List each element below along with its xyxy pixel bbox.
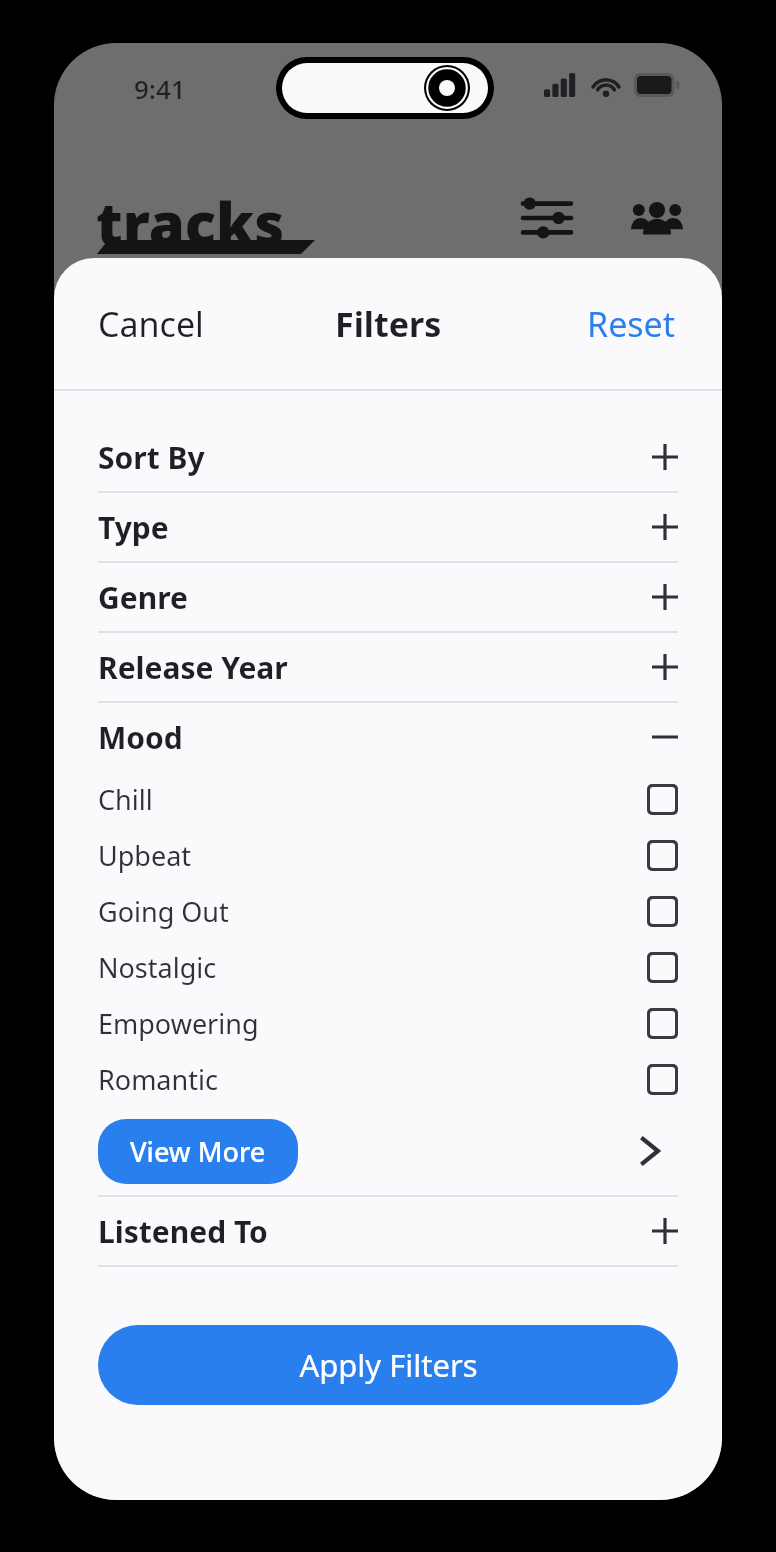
button[interactable]: Nostalgic: [98, 939, 678, 995]
button[interactable]: Filters: [514, 185, 580, 251]
staticText: View More: [130, 1133, 266, 1170]
staticText: Upbeat: [98, 837, 192, 874]
staticText: Nostalgic: [98, 949, 217, 986]
staticText: Going Out: [98, 893, 229, 930]
button[interactable]: Going Out: [98, 883, 678, 939]
staticText: Cancel: [98, 301, 204, 347]
staticText: Listened To: [98, 1211, 268, 1252]
staticText: Filters: [335, 301, 442, 347]
staticText: Reset: [587, 301, 676, 347]
button[interactable]: Romantic: [98, 1051, 678, 1107]
button[interactable]: Genre: [98, 563, 678, 631]
button[interactable]: Empowering: [98, 995, 678, 1051]
button[interactable]: Upbeat: [98, 827, 678, 883]
button[interactable]: Apply Filters: [98, 1325, 678, 1405]
staticText: Chill: [98, 781, 153, 818]
button[interactable]: Sort By: [98, 423, 678, 491]
staticText: Romantic: [98, 1061, 218, 1098]
staticText: Apply Filters: [299, 1344, 478, 1386]
staticText: Type: [98, 507, 169, 548]
staticText: Empowering: [98, 1005, 259, 1042]
staticText: Mood: [98, 717, 183, 758]
button[interactable]: View More: [98, 1119, 298, 1184]
button[interactable]: Chill: [98, 771, 678, 827]
button[interactable]: Type: [98, 493, 678, 561]
staticText: Release Year: [98, 647, 288, 688]
button[interactable]: Release Year: [98, 633, 678, 701]
button[interactable]: Friends: [624, 185, 690, 251]
staticText: tracks: [96, 183, 285, 262]
staticText: Sort By: [98, 437, 205, 478]
button[interactable]: Mood: [98, 703, 678, 771]
staticText: Genre: [98, 577, 188, 618]
staticText: 9:41: [134, 71, 186, 106]
button[interactable]: Reset: [587, 301, 676, 347]
button[interactable]: Listened To: [98, 1197, 678, 1265]
button[interactable]: More moods: [622, 1123, 678, 1179]
button[interactable]: Cancel: [98, 301, 204, 347]
